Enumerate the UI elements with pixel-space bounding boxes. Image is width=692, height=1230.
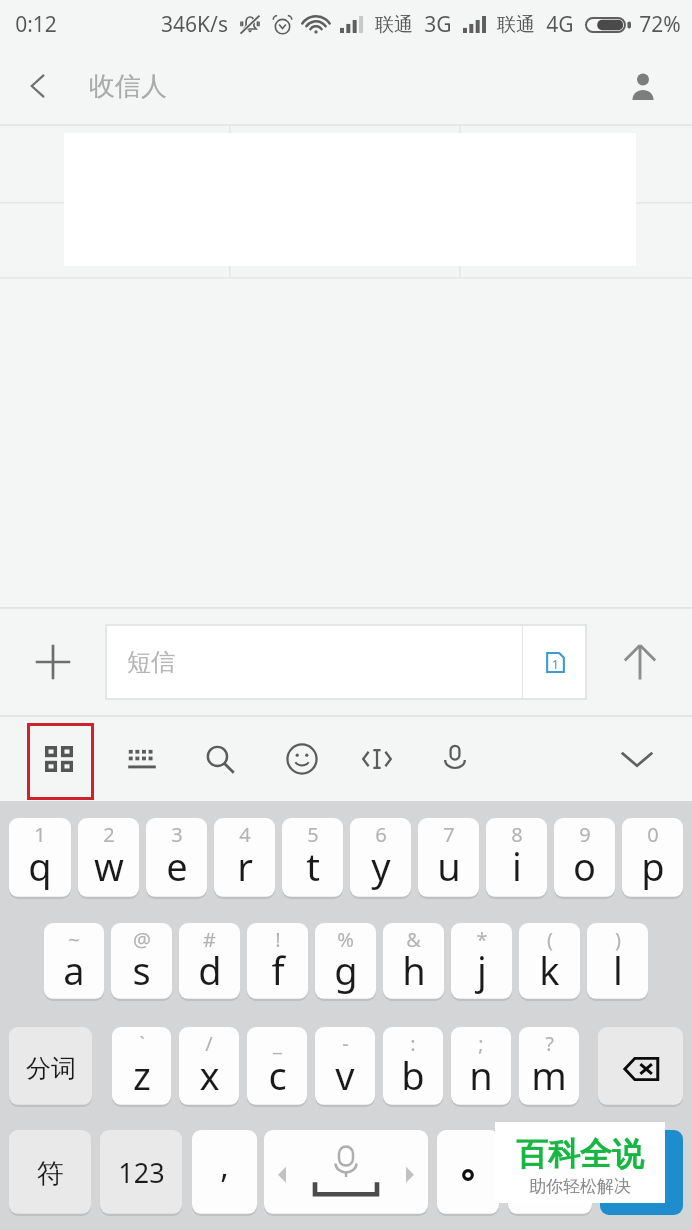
staticText: 1 — [34, 821, 46, 848]
staticText: ? — [545, 1030, 554, 1057]
staticText: y — [371, 840, 391, 892]
button[interactable]: 6 — [350, 818, 411, 898]
staticText: a — [63, 944, 85, 996]
staticText: o — [573, 840, 596, 892]
staticText: w — [94, 840, 124, 892]
staticText: ! — [275, 926, 281, 953]
staticText: 3G — [424, 10, 452, 39]
button[interactable]: 3 — [146, 818, 207, 898]
staticText: 7 — [443, 821, 455, 848]
staticText: 联通 — [375, 13, 413, 37]
button[interactable]: 5 — [282, 818, 343, 898]
button[interactable]: Numbers — [100, 1130, 182, 1215]
button[interactable]: 7 — [418, 818, 479, 898]
staticText: q — [28, 840, 52, 892]
button[interactable]: ) — [587, 923, 648, 1000]
button[interactable]: Emoji — [508, 1130, 592, 1215]
button[interactable]: Period — [437, 1130, 499, 1215]
staticText: * — [476, 926, 488, 953]
button[interactable]: Voice input — [424, 719, 486, 799]
staticText: h — [402, 944, 426, 996]
staticText: 4 — [239, 821, 251, 848]
staticText: 6 — [375, 821, 387, 848]
button[interactable]: # — [179, 923, 240, 1000]
button[interactable]: : — [383, 1027, 443, 1106]
staticText: 0:12 — [15, 10, 57, 39]
staticText: 3 — [171, 821, 183, 848]
staticText: 符 — [37, 1157, 64, 1191]
button[interactable]: ` — [112, 1027, 171, 1106]
staticText: v — [335, 1049, 355, 1101]
staticText: p — [641, 840, 665, 892]
button[interactable]: Add attachment — [0, 607, 105, 717]
staticText: 9 — [579, 821, 591, 848]
button[interactable]: Back — [0, 48, 76, 124]
button[interactable]: Pick contact — [601, 48, 685, 124]
button[interactable]: ~ — [44, 923, 104, 1000]
button[interactable]: 9 — [554, 818, 615, 898]
staticText: 助你轻松解决 — [529, 1176, 631, 1197]
staticText: ~ — [68, 926, 80, 953]
button[interactable]: Search — [189, 719, 251, 799]
button[interactable]: / — [179, 1027, 239, 1106]
staticText: ) — [615, 926, 621, 953]
staticText: ; — [478, 1030, 484, 1057]
button[interactable]: Send — [587, 607, 692, 717]
button[interactable]: Backspace — [598, 1027, 683, 1106]
staticText: ( — [547, 926, 553, 953]
button[interactable]: - — [315, 1027, 375, 1106]
staticText: i — [512, 840, 522, 892]
button[interactable]: Keyboard layout — [111, 719, 173, 799]
button[interactable]: 1 — [9, 818, 71, 898]
staticText: f — [271, 944, 285, 996]
staticText: 346K/s — [161, 10, 228, 39]
staticText: - — [342, 1030, 349, 1057]
staticText: 8 — [511, 821, 523, 848]
button[interactable]: 短信 — [105, 624, 587, 700]
staticText: 123 — [118, 1154, 165, 1191]
button[interactable]: Space — [264, 1130, 428, 1215]
button[interactable]: Emoji — [271, 719, 333, 799]
staticText: z — [133, 1049, 151, 1101]
button[interactable]: 2 — [78, 818, 139, 898]
staticText: @ — [133, 926, 151, 953]
staticText: : — [410, 1030, 416, 1057]
staticText: 5 — [307, 821, 319, 848]
button[interactable]: @ — [111, 923, 172, 1000]
button[interactable]: 8 — [486, 818, 547, 898]
staticText: c — [268, 1049, 287, 1101]
staticText: b — [401, 1049, 425, 1101]
button[interactable]: Segment — [9, 1027, 92, 1106]
staticText: & — [406, 926, 421, 953]
staticText: m — [531, 1049, 567, 1101]
button[interactable]: Enter — [600, 1130, 683, 1215]
staticText: 0 — [647, 821, 659, 848]
button[interactable]: * — [451, 923, 512, 1000]
button[interactable]: Hide keyboard — [599, 717, 675, 801]
staticText: 2 — [103, 821, 115, 848]
button[interactable]: 4 — [214, 818, 275, 898]
staticText: d — [198, 944, 222, 996]
staticText: r — [237, 840, 253, 892]
staticText: % — [337, 926, 354, 953]
button[interactable]: ( — [519, 923, 580, 1000]
button[interactable]: 0 — [622, 818, 683, 898]
button[interactable]: Symbols — [9, 1130, 91, 1215]
staticText: 收信人 — [89, 70, 167, 103]
staticText: _ — [273, 1030, 282, 1057]
button[interactable]: ? — [519, 1027, 579, 1106]
button[interactable]: Input panel — [27, 723, 94, 800]
button[interactable]: _ — [247, 1027, 307, 1106]
button[interactable]: % — [315, 923, 376, 1000]
button[interactable]: & — [383, 923, 444, 1000]
staticText: # — [203, 926, 216, 953]
button[interactable]: ! — [247, 923, 308, 1000]
button[interactable]: ; — [451, 1027, 511, 1106]
button[interactable]: Comma — [192, 1130, 257, 1215]
staticText: 联通 — [497, 13, 535, 37]
staticText: u — [437, 840, 461, 892]
staticText: l — [613, 944, 623, 996]
staticText: / — [205, 1030, 213, 1057]
button[interactable]: Move cursor — [346, 719, 408, 799]
staticText: 4G — [546, 10, 574, 39]
